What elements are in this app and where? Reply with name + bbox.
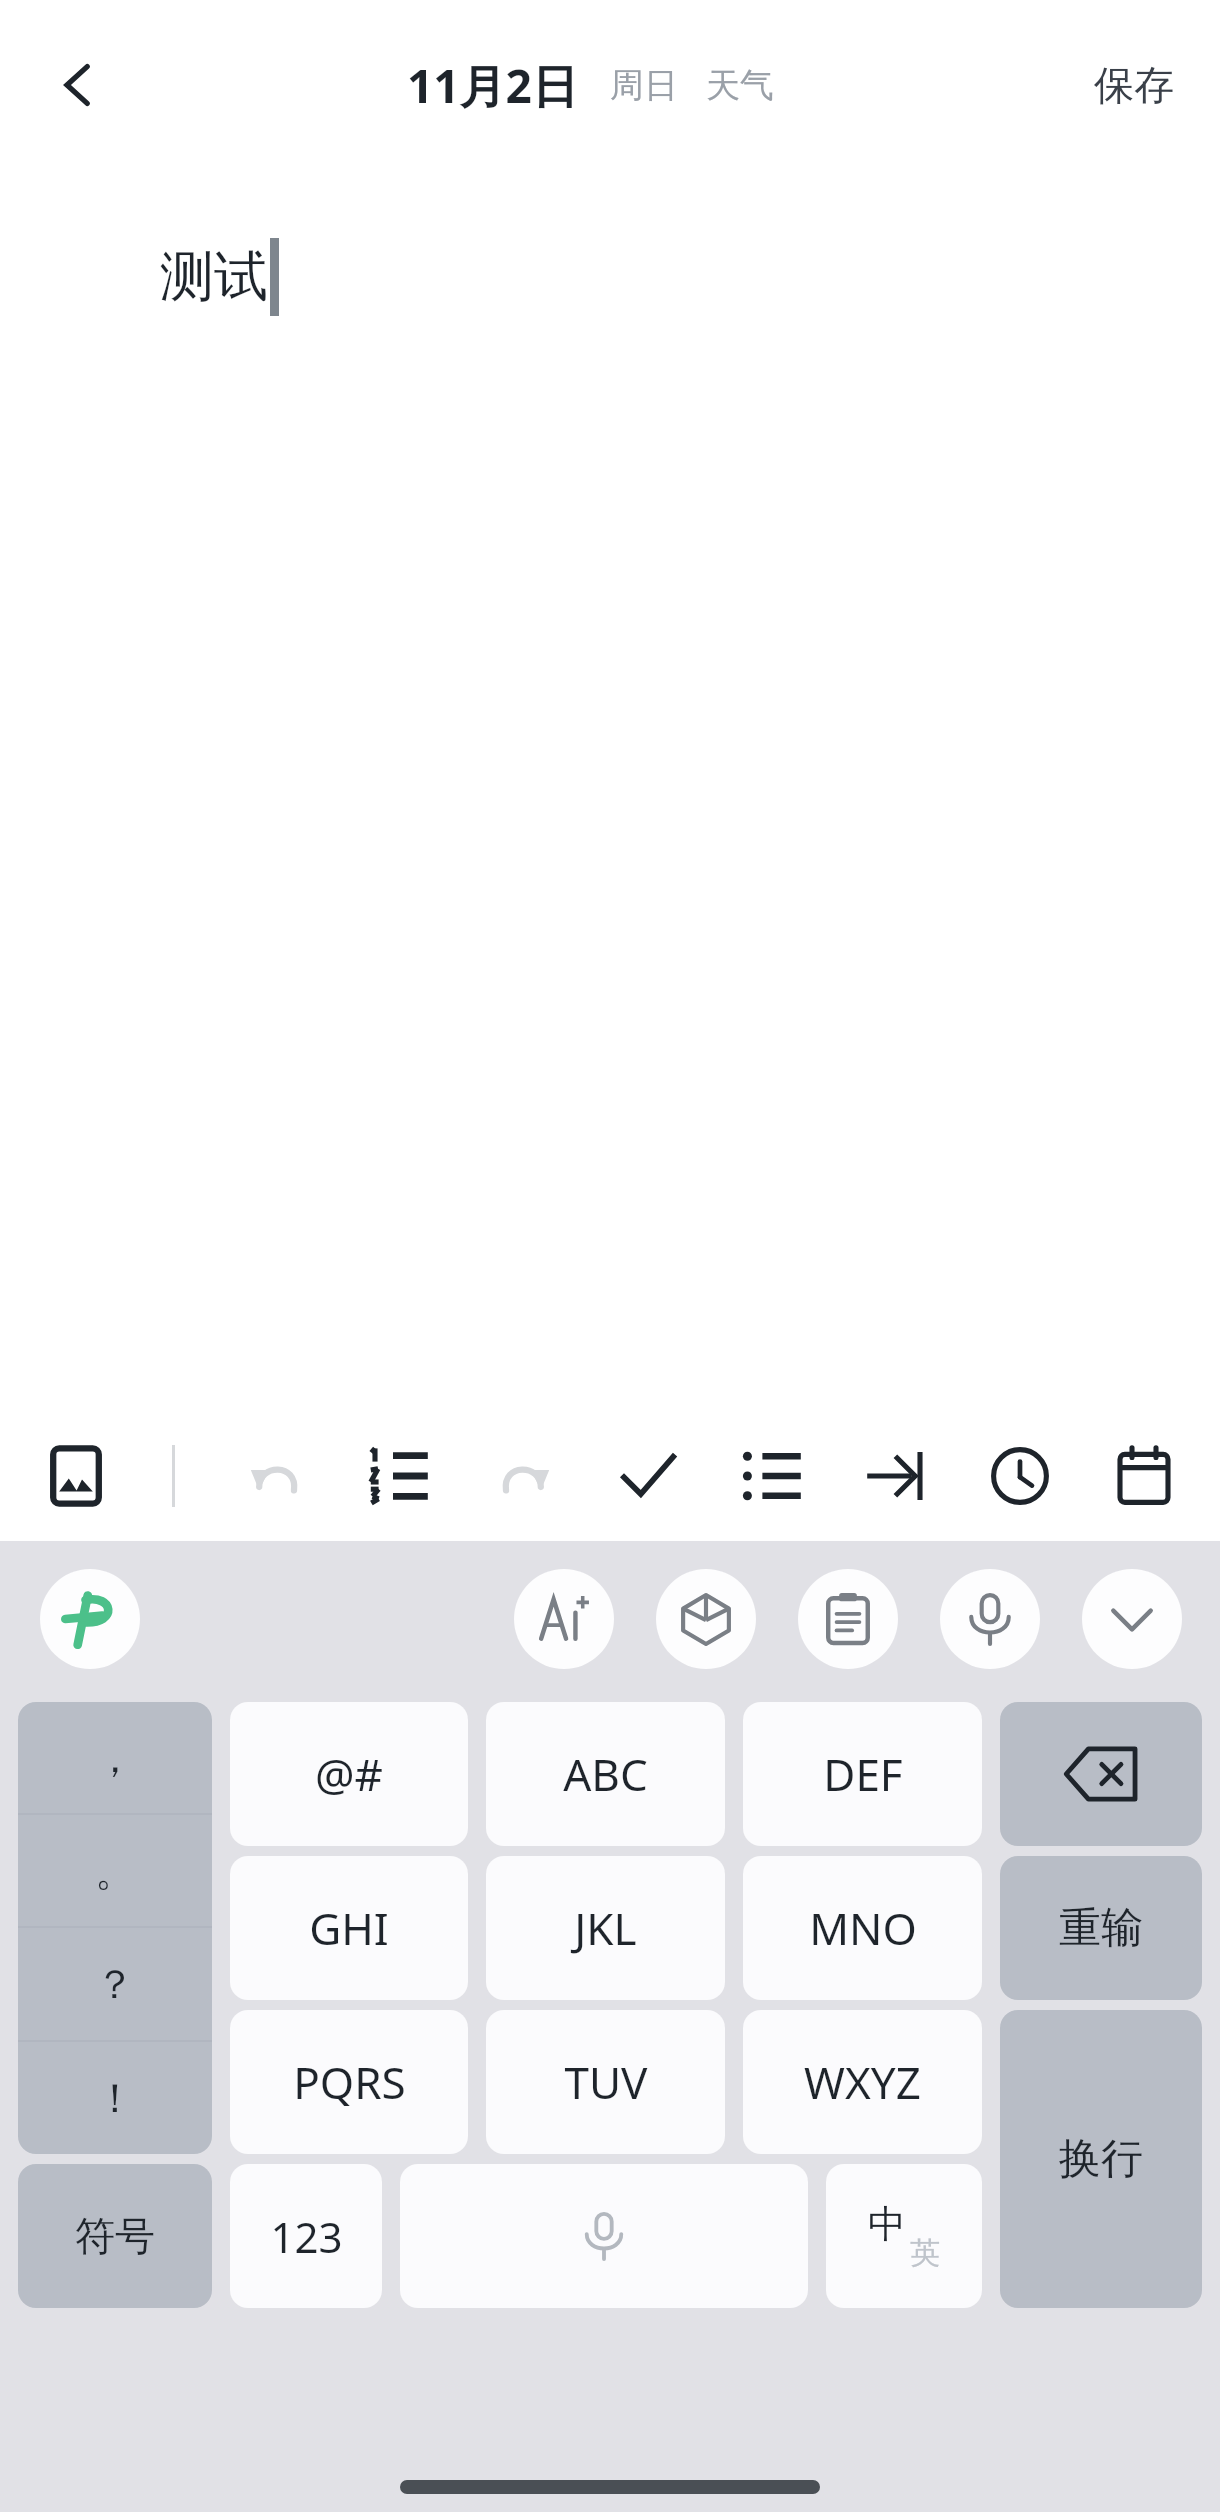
staticText: 重输: [1059, 1902, 1143, 1955]
staticText: 天气: [706, 64, 774, 107]
button[interactable]: AI writing: [514, 1569, 614, 1669]
staticText: MNO: [809, 1898, 917, 1958]
staticText: 英: [910, 2234, 940, 2272]
staticText: 换行: [1059, 2133, 1143, 2186]
staticText: ？: [95, 1959, 135, 2009]
button[interactable]: JKL: [486, 1856, 725, 2000]
staticText: DEF: [823, 1744, 903, 1804]
button[interactable]: ，: [18, 1702, 212, 1813]
button[interactable]: PQRS: [230, 2010, 468, 2154]
button[interactable]: 保存: [1084, 46, 1184, 124]
staticText: 中: [868, 2200, 906, 2248]
button[interactable]: Insert time: [966, 1422, 1074, 1530]
button[interactable]: Back: [30, 37, 126, 133]
staticText: ，: [95, 1733, 135, 1783]
button[interactable]: 天气: [706, 64, 774, 107]
staticText: WXYZ: [804, 2052, 921, 2112]
button[interactable]: Hide keyboard: [1082, 1569, 1182, 1669]
staticText: @#: [315, 1744, 383, 1804]
staticText: GHI: [309, 1898, 389, 1958]
button[interactable]: 。: [18, 1815, 212, 1926]
button[interactable]: 重输: [1000, 1856, 1202, 2000]
button[interactable]: Voice input: [400, 2164, 808, 2308]
staticText: 保存: [1094, 60, 1174, 110]
button[interactable]: GHI: [230, 1856, 468, 2000]
button[interactable]: 3D cube: [656, 1569, 756, 1669]
button[interactable]: Input method: [40, 1569, 140, 1669]
button[interactable]: Insert date: [1090, 1422, 1198, 1530]
staticText: PQRS: [293, 2052, 406, 2112]
button[interactable]: ABC: [486, 1702, 725, 1846]
staticText: JKL: [574, 1898, 637, 1958]
button[interactable]: Insert image: [22, 1422, 130, 1530]
staticText: 周日: [610, 64, 678, 107]
staticText: 。: [95, 1846, 135, 1896]
staticText: 11月2日: [407, 54, 578, 117]
button[interactable]: Bulleted list: [718, 1422, 826, 1530]
button[interactable]: DEF: [743, 1702, 982, 1846]
button[interactable]: Redo: [470, 1422, 578, 1530]
staticText: ABC: [563, 1744, 648, 1804]
button[interactable]: TUV: [486, 2010, 725, 2154]
staticText: 符号: [75, 2211, 155, 2261]
button[interactable]: @#: [230, 1702, 468, 1846]
staticText: TUV: [564, 2052, 648, 2112]
button[interactable]: Numbered list: [345, 1422, 453, 1530]
button[interactable]: Voice input: [940, 1569, 1040, 1669]
button[interactable]: 符号: [18, 2164, 212, 2308]
button[interactable]: Clipboard: [798, 1569, 898, 1669]
button[interactable]: WXYZ: [743, 2010, 982, 2154]
staticText: ！: [95, 2073, 135, 2123]
button[interactable]: Chinese English toggle: [826, 2164, 982, 2308]
button[interactable]: 123: [230, 2164, 382, 2308]
staticText: 测试: [160, 243, 268, 311]
staticText: 123: [270, 2208, 343, 2265]
button[interactable]: Backspace: [1000, 1702, 1202, 1846]
button[interactable]: MNO: [743, 1856, 982, 2000]
button[interactable]: Indent: [842, 1422, 950, 1530]
button[interactable]: Undo: [222, 1422, 330, 1530]
button[interactable]: ？: [18, 1928, 212, 2040]
button[interactable]: Checklist: [594, 1422, 702, 1530]
button[interactable]: 换行: [1000, 2010, 1202, 2308]
button[interactable]: 测试: [0, 170, 1220, 1411]
button[interactable]: ！: [18, 2042, 212, 2154]
